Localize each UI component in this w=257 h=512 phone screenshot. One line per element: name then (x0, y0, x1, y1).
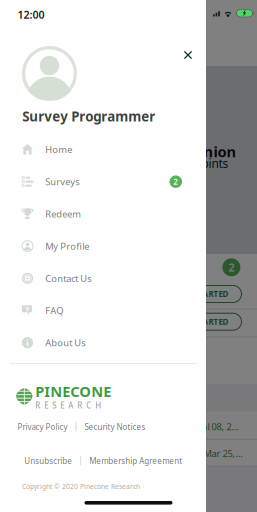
staticText: Jul 08, 2… (198, 420, 238, 433)
staticText: Privacy Policy (18, 421, 68, 432)
staticText: GET STARTED (177, 289, 228, 299)
staticText: Earn rewards points (116, 155, 228, 171)
staticText: My Profile (45, 240, 89, 252)
staticText: GET STARTED (177, 316, 228, 327)
staticText: Survey Programmer (22, 107, 155, 125)
staticText: About Us (45, 336, 85, 349)
staticText: 2 (173, 176, 178, 187)
button[interactable]: Privacy Policy (17, 417, 69, 436)
staticText: Redeem (45, 208, 81, 220)
button[interactable]: Surveys (0, 166, 206, 198)
button[interactable]: Home (0, 133, 206, 166)
button[interactable]: Redeem (0, 198, 206, 230)
staticText: Security Notices (85, 421, 146, 432)
staticText: Contact Us (45, 272, 91, 284)
staticText: Surveys (45, 175, 79, 188)
staticText: ? (25, 305, 29, 316)
staticText: PINECONE (35, 381, 111, 401)
staticText: Share your opinion (97, 142, 236, 161)
staticText: Membership Agreement (89, 455, 182, 466)
staticText: Mar 25,… (203, 447, 242, 460)
button[interactable]: Close menu (175, 42, 201, 68)
button[interactable]: Security Notices (84, 417, 147, 436)
staticText: Home (45, 143, 72, 156)
staticText: Unsubscribe (24, 455, 72, 466)
button[interactable]: ? (0, 294, 206, 327)
button[interactable]: Membership Agreement (88, 451, 183, 470)
staticText: FAQ (45, 304, 63, 317)
staticText: 12:00 (17, 7, 44, 22)
staticText: R E S E A R C H (35, 400, 101, 411)
staticText: Copyright © 2020 Pinecone Research (22, 482, 140, 491)
button[interactable]: My Profile (0, 230, 206, 262)
staticText: 2 (228, 260, 234, 274)
button[interactable]: About Us (0, 327, 206, 359)
button[interactable]: Contact Us (0, 262, 206, 294)
button[interactable]: Unsubscribe (23, 451, 73, 470)
